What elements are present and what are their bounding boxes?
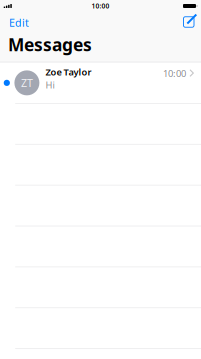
staticText: ZT <box>21 76 33 90</box>
staticText: Edit <box>9 15 29 30</box>
button[interactable]: ZT <box>0 63 201 103</box>
button[interactable]: Compose <box>175 13 201 32</box>
staticText: 10:00 <box>163 67 186 80</box>
button[interactable]: Edit <box>0 11 38 34</box>
staticText: Hi <box>45 79 54 91</box>
staticText: 10:00 <box>91 2 109 10</box>
staticText: Messages <box>8 33 92 56</box>
staticText: Zoe Taylor <box>45 66 91 78</box>
